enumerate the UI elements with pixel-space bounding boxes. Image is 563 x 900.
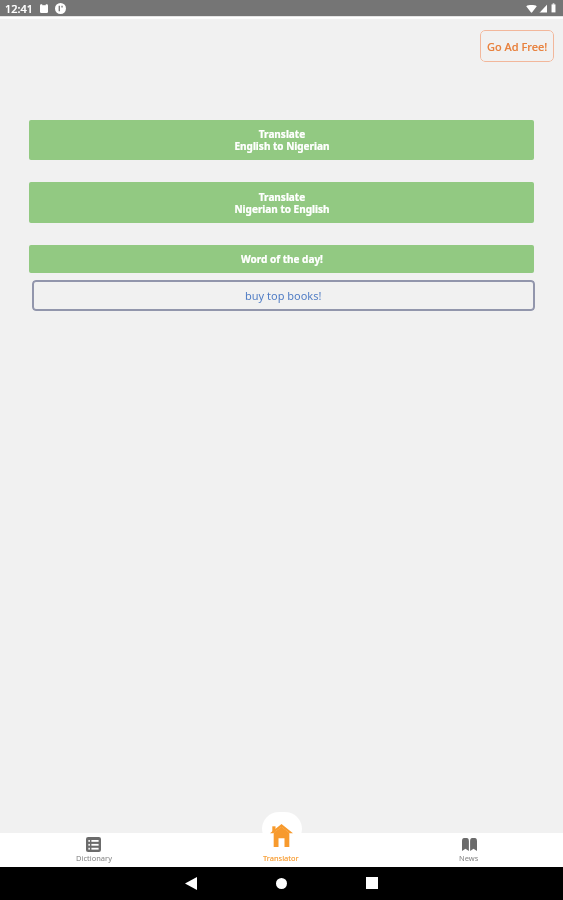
staticText: Translator xyxy=(263,853,299,863)
staticText: buy top books! xyxy=(245,288,322,303)
staticText: 12:41 xyxy=(5,1,34,16)
button[interactable]: Recent apps xyxy=(357,868,387,898)
button[interactable]: Translate Nigerian to English xyxy=(29,182,534,223)
staticText: Translate English to Nigerian xyxy=(234,127,330,153)
button[interactable]: Dictionary xyxy=(0,833,187,867)
staticText: Word of the day! xyxy=(241,252,323,266)
button[interactable]: Word of the day! xyxy=(29,245,534,273)
button[interactable]: Translator xyxy=(187,833,375,867)
button[interactable]: News xyxy=(375,833,563,867)
staticText: News xyxy=(459,853,479,863)
staticText: Translate Nigerian to English xyxy=(234,190,330,216)
button[interactable]: Go Ad Free! xyxy=(480,30,554,62)
staticText: Dictionary xyxy=(76,853,112,863)
button[interactable]: buy top books! xyxy=(32,280,535,311)
button[interactable]: Translate English to Nigerian xyxy=(29,120,534,160)
button[interactable]: Back xyxy=(176,868,206,898)
staticText: Go Ad Free! xyxy=(487,39,548,54)
button[interactable]: Home xyxy=(266,868,296,898)
